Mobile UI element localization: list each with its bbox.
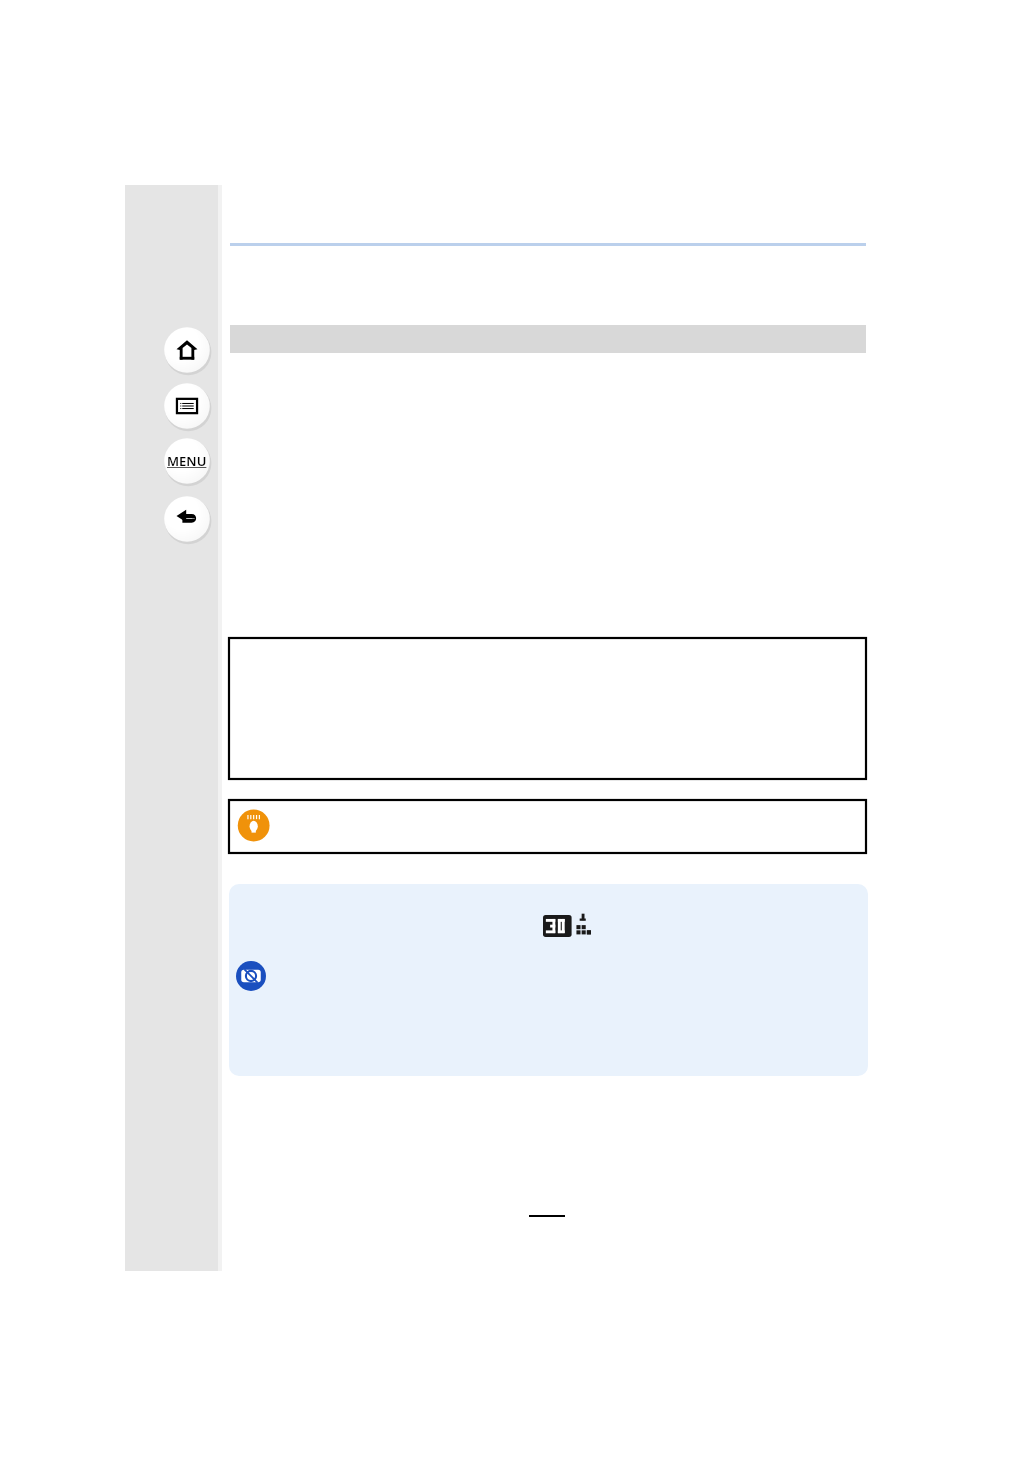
button[interactable]: Back bbox=[163, 495, 211, 543]
button[interactable]: List bbox=[163, 382, 211, 430]
button[interactable]: Home bbox=[163, 326, 211, 374]
staticText: MENU bbox=[167, 452, 207, 470]
button[interactable]: Menu bbox=[163, 437, 211, 485]
